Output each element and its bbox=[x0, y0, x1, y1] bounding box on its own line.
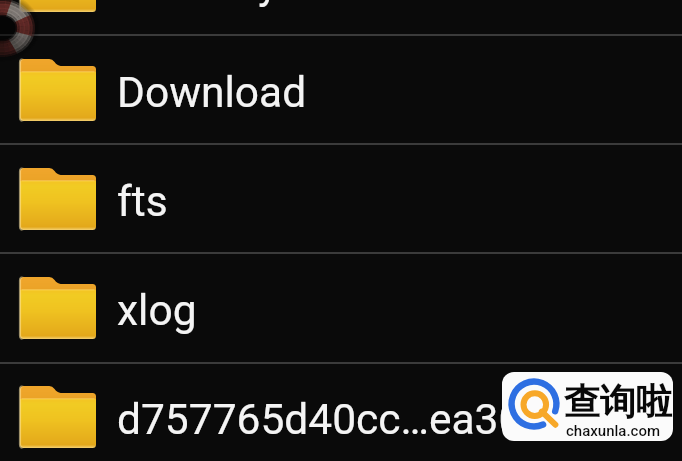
button[interactable] bbox=[0, 0, 682, 35]
staticText: chaxunla.com bbox=[566, 422, 660, 440]
button[interactable]: d757765d40cc…ea30f4 bbox=[0, 362, 682, 461]
staticText: Memory bbox=[122, 0, 279, 9]
staticText: 查询啦 bbox=[564, 379, 672, 424]
button[interactable]: fts bbox=[0, 144, 682, 253]
button[interactable]: Download bbox=[0, 35, 682, 144]
staticText: fts bbox=[117, 177, 168, 227]
other: Help bbox=[0, 0, 80, 80]
button[interactable]: xlog bbox=[0, 253, 682, 362]
staticText: d757765d40cc…ea30f4 bbox=[117, 395, 562, 445]
staticText: xlog bbox=[117, 286, 197, 336]
staticText: Download bbox=[117, 68, 307, 118]
